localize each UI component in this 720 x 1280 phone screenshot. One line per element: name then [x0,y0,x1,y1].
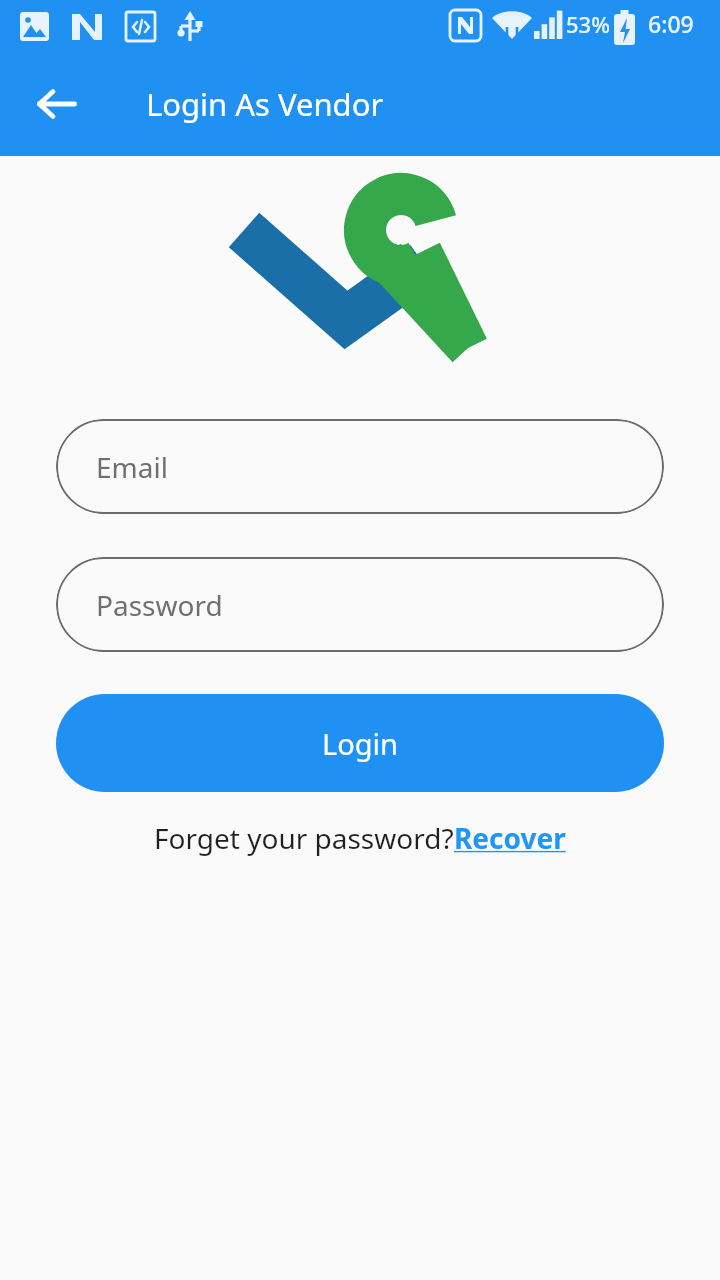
button[interactable]: Email [56,419,664,514]
staticText: Login As Vendor [146,83,384,125]
button[interactable]: Recover [454,819,566,857]
staticText: Login [322,724,398,763]
staticText: 53% [566,9,610,39]
staticText: Email [96,448,168,486]
staticText: Password [96,586,223,624]
staticText: 6:09 [648,8,694,39]
button[interactable]: Password [56,557,664,652]
staticText: Recover [454,819,566,857]
staticText: Forget your password? [154,819,454,857]
button[interactable]: Login [56,694,664,792]
button[interactable]: Back [20,67,94,141]
